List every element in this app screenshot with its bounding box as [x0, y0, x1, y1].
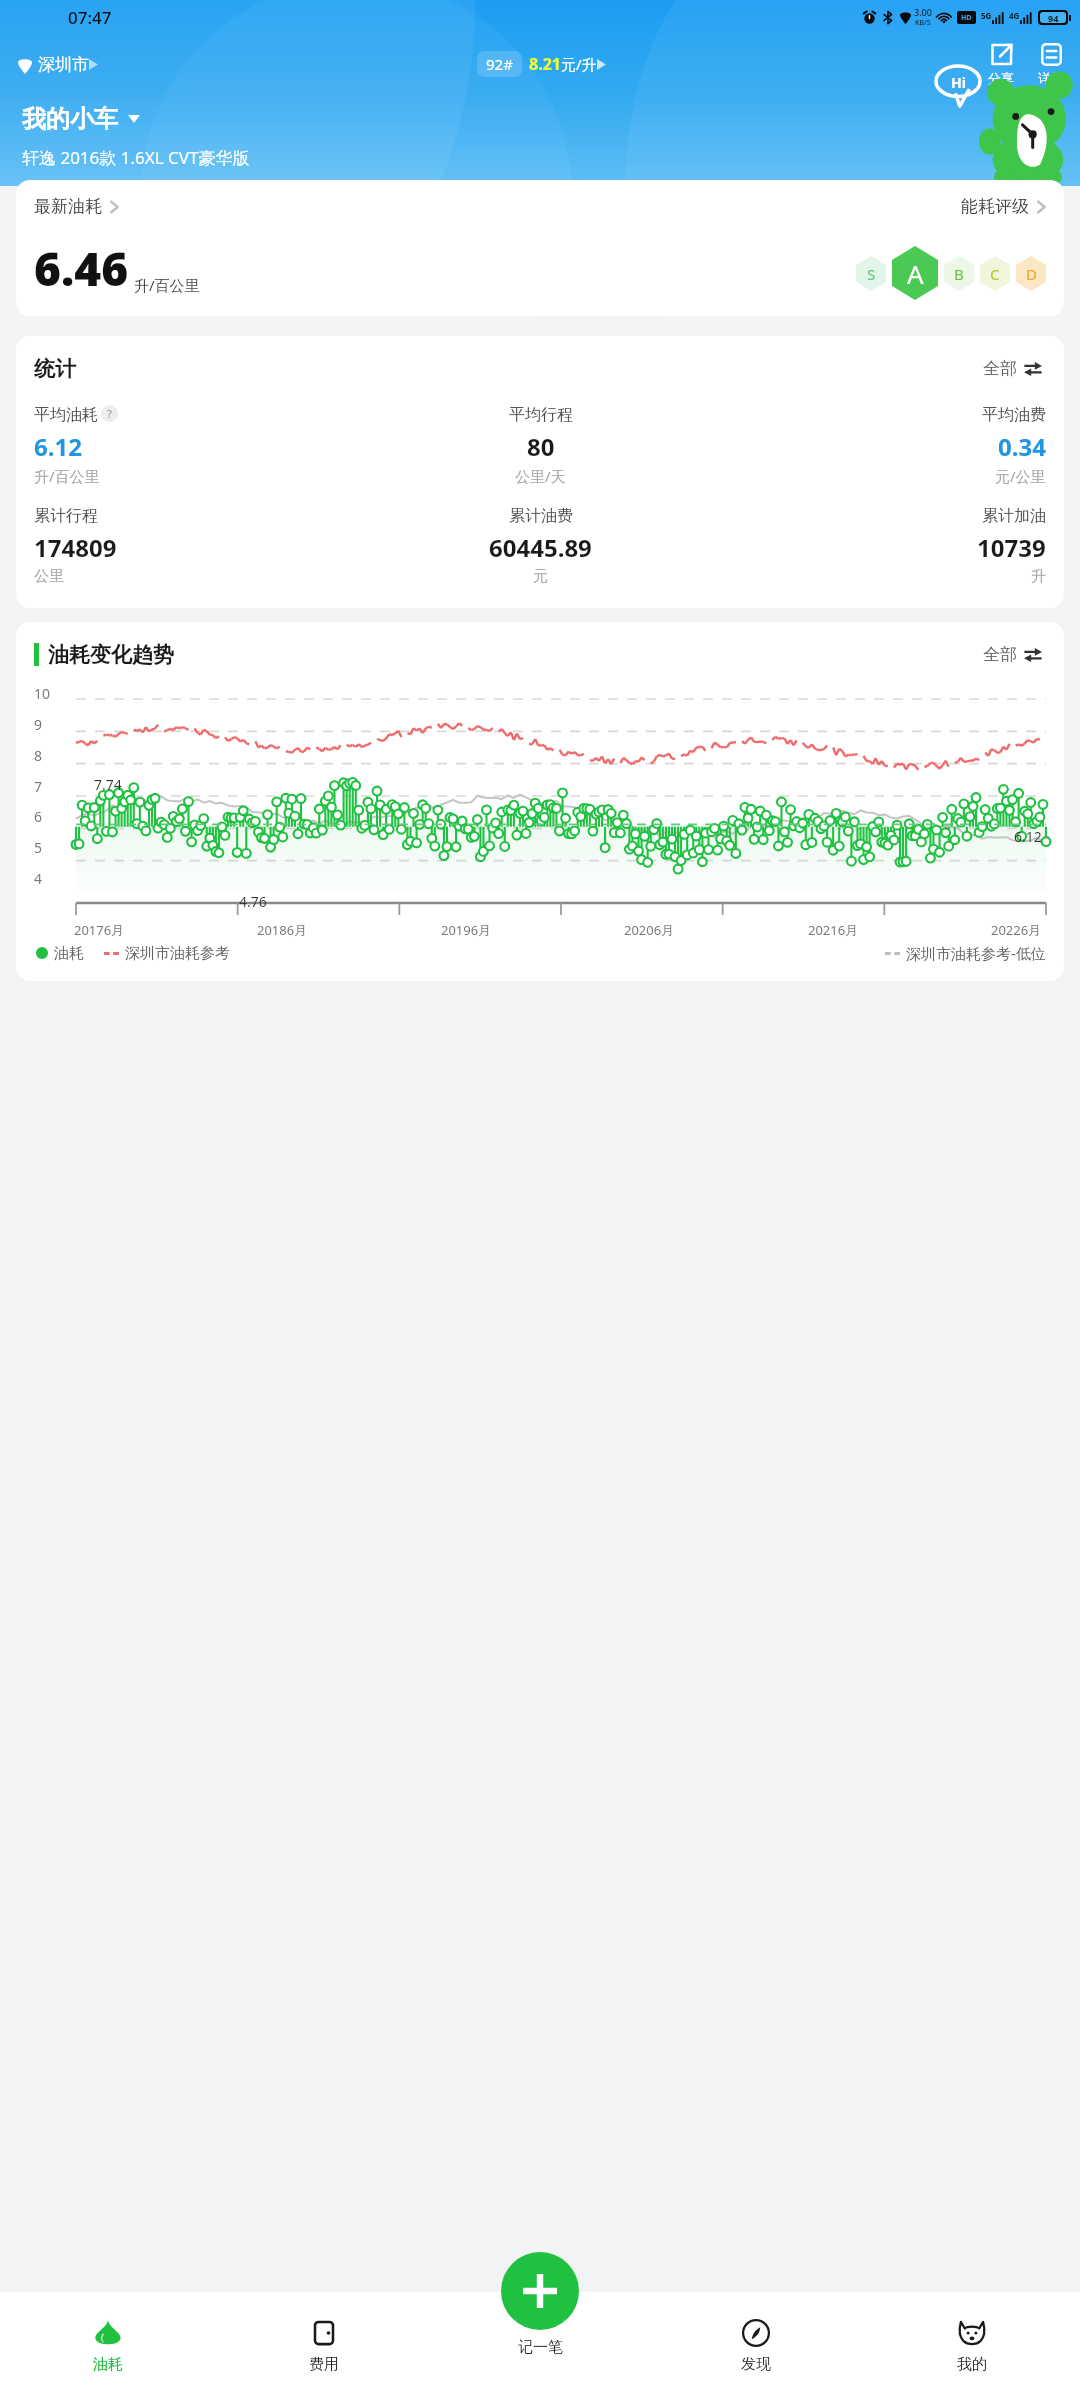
button[interactable]: 发现: [648, 2292, 864, 2400]
button[interactable]: 平均行程: [372, 405, 709, 486]
staticText: A: [907, 256, 924, 291]
staticText: 9: [34, 715, 43, 734]
staticText: 全部: [983, 358, 1017, 379]
staticText: 记一笔: [518, 2338, 563, 2357]
button[interactable]: 详单: [1036, 40, 1066, 88]
staticText: 174809: [34, 531, 117, 564]
staticText: 20206月: [624, 921, 675, 939]
button[interactable]: 平均油耗: [34, 405, 372, 486]
staticText: 4: [34, 869, 43, 888]
button[interactable]: 累计行程: [34, 506, 372, 586]
staticText: 全部: [983, 644, 1017, 665]
button[interactable]: 平均油费: [709, 405, 1046, 486]
staticText: 4G: [1009, 10, 1020, 21]
staticText: 20196月: [441, 921, 492, 939]
staticText: 3.00: [914, 6, 932, 18]
staticText: 20226月: [991, 921, 1042, 939]
staticText: 6.12: [1014, 827, 1042, 846]
staticText: 元/升: [561, 54, 597, 74]
staticText: 升: [1031, 567, 1046, 586]
staticText: 轩逸 2016款 1.6XL CVT豪华版: [22, 146, 250, 169]
staticText: 我的: [957, 2355, 987, 2374]
button[interactable]: 累计加油: [709, 506, 1046, 586]
staticText: 升/百公里: [34, 466, 100, 486]
staticText: 统计: [34, 356, 76, 382]
staticText: 4.76: [239, 892, 267, 911]
staticText: 累计行程: [34, 506, 98, 526]
staticText: 92#: [486, 54, 513, 74]
staticText: 80: [527, 430, 555, 463]
button[interactable]: 我的小车: [22, 104, 140, 134]
staticText: KB/S: [915, 18, 931, 28]
staticText: 油耗: [93, 2355, 123, 2374]
staticText: 20186月: [257, 921, 308, 939]
staticText: 最新油耗: [34, 196, 102, 217]
staticText: 10: [34, 684, 51, 703]
staticText: B: [954, 264, 964, 284]
staticText: C: [990, 264, 1000, 284]
staticText: 能耗评级: [961, 196, 1029, 217]
staticText: 6.46: [34, 237, 129, 300]
staticText: 油耗变化趋势: [48, 642, 174, 668]
staticText: 元: [533, 567, 548, 586]
button[interactable]: 累计油费: [372, 506, 709, 586]
staticText: 6: [34, 807, 43, 826]
button[interactable]: S: [856, 256, 886, 291]
button[interactable]: B: [944, 256, 974, 291]
staticText: 平均油费: [982, 405, 1046, 425]
staticText: 20176月: [74, 921, 125, 939]
staticText: 94: [1048, 12, 1059, 23]
staticText: 8.21: [529, 53, 561, 75]
staticText: D: [1026, 264, 1037, 284]
staticText: 升/百公里: [134, 275, 200, 295]
button[interactable]: 深圳市: [18, 50, 98, 79]
staticText: ?: [107, 406, 112, 421]
staticText: 平均行程: [509, 405, 573, 425]
staticText: Hi: [951, 73, 966, 92]
button[interactable]: 全部: [979, 640, 1046, 669]
staticText: 20216月: [808, 921, 859, 939]
staticText: 平均油耗: [34, 405, 98, 425]
staticText: 5: [34, 838, 43, 857]
staticText: 费用: [309, 2355, 339, 2374]
staticText: 8: [34, 746, 43, 765]
staticText: 7.74: [94, 775, 122, 794]
staticText: 油耗: [54, 944, 84, 963]
button[interactable]: 92#: [477, 51, 606, 77]
staticText: 07:47: [68, 6, 112, 29]
button[interactable]: 油耗: [0, 2292, 216, 2400]
staticText: S: [867, 264, 876, 284]
staticText: 6.12: [34, 430, 82, 463]
staticText: 我的小车: [22, 104, 118, 134]
button[interactable]: 记一笔: [501, 2252, 579, 2330]
button[interactable]: C: [980, 256, 1010, 291]
button[interactable]: A: [892, 246, 938, 300]
button[interactable]: 分享: [986, 40, 1016, 88]
staticText: 发现: [741, 2355, 771, 2374]
staticText: 10739: [977, 531, 1046, 564]
button[interactable]: 最新油耗: [16, 180, 1064, 316]
staticText: 分享: [988, 70, 1014, 86]
button[interactable]: 全部: [979, 354, 1046, 383]
staticText: HD: [961, 13, 972, 23]
staticText: 累计油费: [509, 506, 573, 526]
staticText: 深圳市: [38, 54, 89, 75]
button[interactable]: 我的: [864, 2292, 1080, 2400]
staticText: 60445.89: [489, 531, 592, 564]
staticText: 深圳市油耗参考: [125, 944, 230, 963]
staticText: 深圳市油耗参考-低位: [906, 943, 1046, 963]
staticText: 详单: [1038, 70, 1064, 86]
staticText: 累计加油: [982, 506, 1046, 526]
staticText: 公里/天: [515, 466, 566, 486]
staticText: 5G: [981, 10, 992, 21]
button[interactable]: D: [1016, 256, 1046, 291]
staticText: 7: [34, 777, 43, 796]
staticText: 公里: [34, 567, 64, 586]
button[interactable]: 费用: [216, 2292, 432, 2400]
staticText: 0.34: [998, 430, 1046, 463]
staticText: 元/公里: [995, 466, 1046, 486]
